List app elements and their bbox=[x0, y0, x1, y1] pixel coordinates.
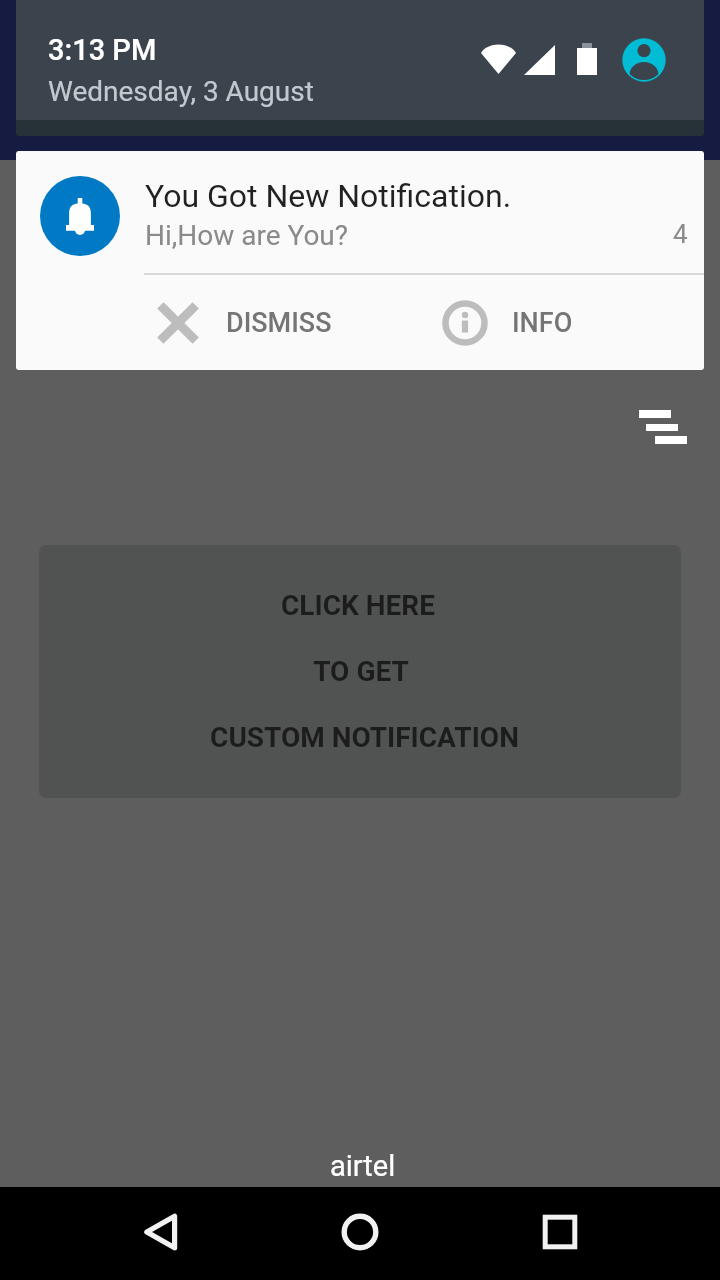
staticText: airtel bbox=[330, 1149, 396, 1183]
button[interactable]: Back bbox=[120, 1192, 200, 1272]
staticText: 4 bbox=[673, 219, 688, 249]
button[interactable]: Home bbox=[320, 1192, 400, 1272]
staticText: CUSTOM NOTIFICATION bbox=[210, 721, 519, 754]
staticText: CLICK HERE bbox=[281, 589, 435, 622]
staticText: TO GET bbox=[313, 655, 409, 688]
staticText: 3:13 PM bbox=[48, 33, 157, 67]
staticText: INFO bbox=[512, 307, 573, 339]
staticText: DISMISS bbox=[226, 307, 332, 339]
staticText: Wednesday, 3 August bbox=[48, 75, 314, 108]
staticText: Hi,How are You? bbox=[145, 219, 349, 252]
button[interactable]: Recent apps bbox=[520, 1192, 600, 1272]
staticText: You Got New Notification. bbox=[145, 177, 512, 215]
button[interactable]: DISMISS bbox=[155, 300, 332, 346]
button[interactable]: INFO bbox=[442, 300, 573, 346]
button[interactable]: Sort bbox=[630, 398, 692, 460]
button[interactable]: CLICK HERE bbox=[39, 545, 681, 798]
